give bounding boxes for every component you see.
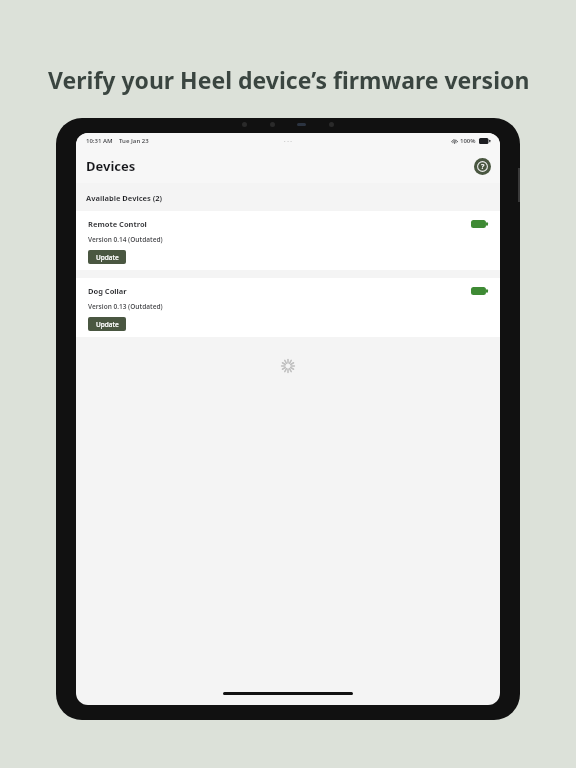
staticText: Update (96, 253, 119, 262)
staticText: Version 0.13 (Outdated) (88, 302, 163, 311)
staticText: Remote Control (88, 219, 147, 229)
staticText: Verify your Heel device’s firmware versi… (48, 64, 534, 95)
button[interactable]: Update (88, 317, 126, 331)
staticText: Dog Collar (88, 286, 127, 296)
staticText: · · · (284, 137, 292, 145)
staticText: 10:31 AM (86, 137, 113, 145)
staticText: Version 0.14 (Outdated) (88, 235, 163, 244)
button[interactable]: Remote Control (76, 211, 500, 270)
staticText: ? (481, 162, 485, 172)
button[interactable]: Dog Collar (76, 278, 500, 337)
button[interactable]: Help (474, 158, 491, 175)
staticText: Available Devices (2) (86, 193, 163, 203)
staticText: Devices (86, 157, 136, 175)
staticText: Tue Jan 23 (119, 137, 149, 145)
staticText: 100% (460, 137, 476, 145)
staticText: Update (96, 320, 119, 329)
button[interactable]: Update (88, 250, 126, 264)
